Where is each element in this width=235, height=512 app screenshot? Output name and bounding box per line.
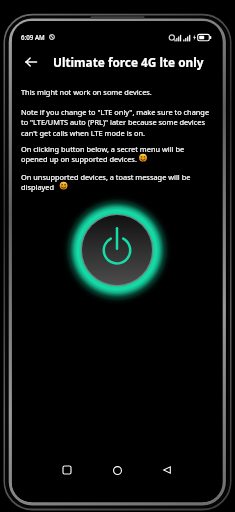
button[interactable]: Back — [154, 457, 180, 483]
staticText: This might not work on some devices. — [21, 87, 152, 97]
staticText: On unsupported devices, a toast message … — [21, 172, 212, 192]
button[interactable]: Home — [104, 457, 130, 483]
button[interactable]: Power — [62, 195, 172, 305]
staticText: On clicking button below, a secret menu … — [21, 144, 212, 164]
button[interactable]: Back — [20, 51, 42, 73]
staticText: Ultimate force 4G lte only — [53, 54, 204, 70]
button[interactable]: Recents — [54, 457, 80, 483]
staticText: 6:09 AM — [21, 33, 45, 41]
staticText: Note if you change to "LTE only", make s… — [21, 107, 212, 138]
